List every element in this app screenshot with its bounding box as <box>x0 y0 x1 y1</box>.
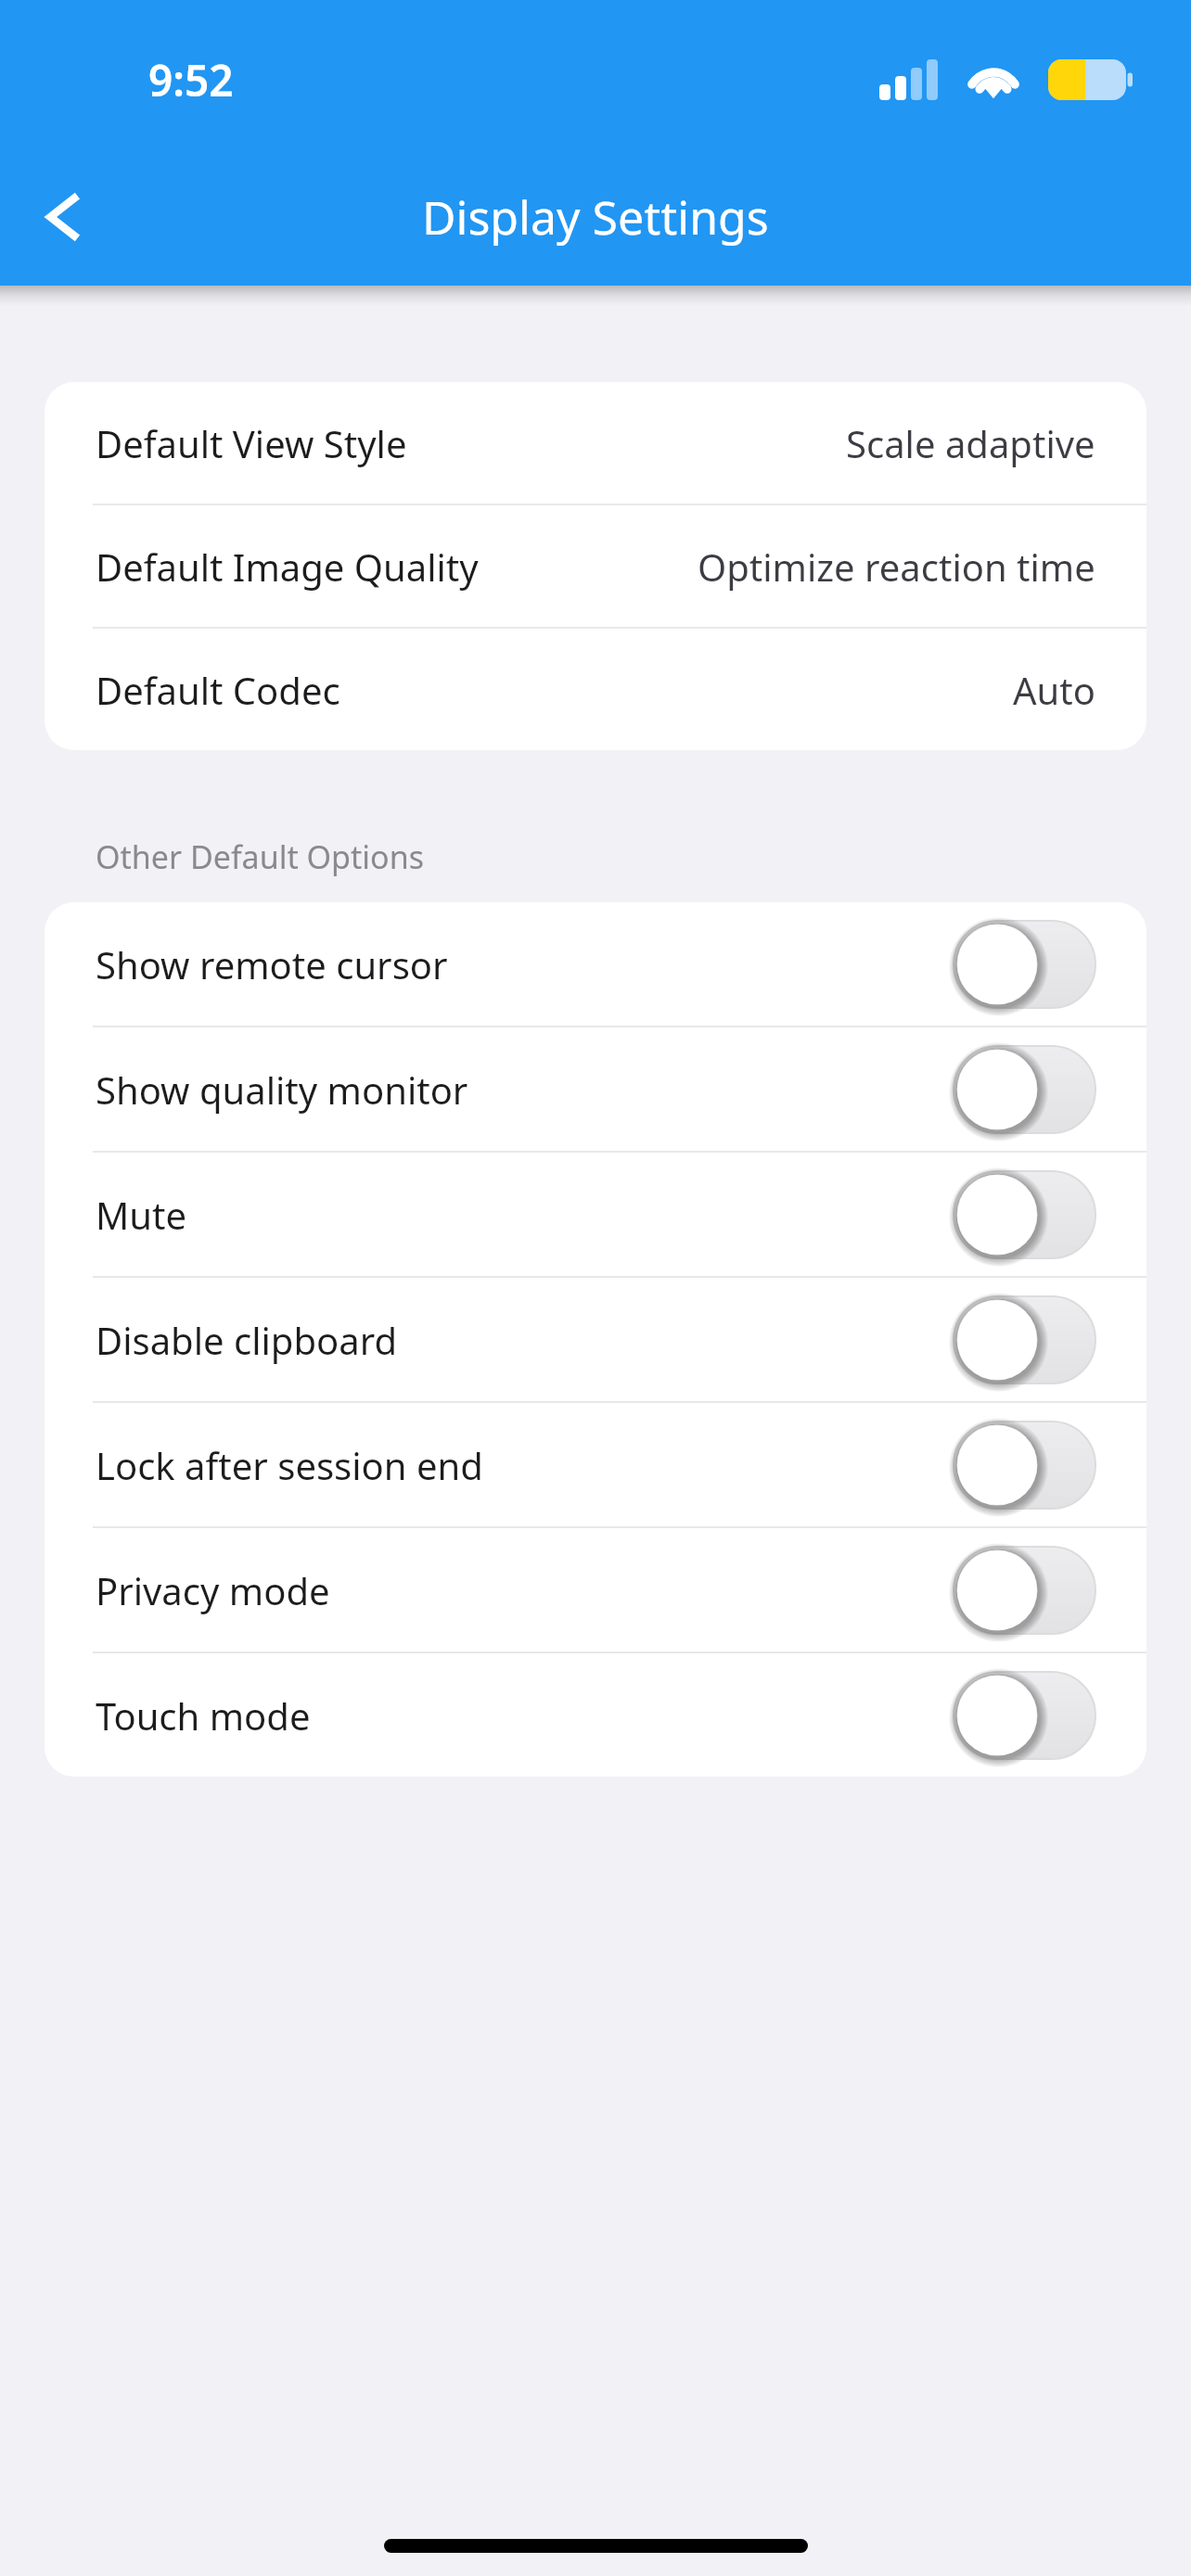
staticText: 9:52 <box>148 51 234 109</box>
button[interactable]: Lock after session end <box>45 1403 1146 1526</box>
button[interactable]: Toggle <box>954 921 1095 1008</box>
staticText: Optimize reaction time <box>698 542 1095 592</box>
staticText: Lock after session end <box>96 1440 483 1490</box>
button[interactable]: Show remote cursor <box>45 902 1146 1026</box>
button[interactable]: Toggle <box>954 1046 1095 1133</box>
button[interactable]: Default View Style <box>45 382 1146 504</box>
button[interactable]: Toggle <box>954 1422 1095 1509</box>
button[interactable]: Back <box>20 172 109 261</box>
button[interactable]: Toggle <box>954 1296 1095 1384</box>
staticText: Default Codec <box>96 665 340 715</box>
button[interactable]: Default Image Quality <box>45 505 1146 627</box>
button[interactable]: Mute <box>45 1153 1146 1276</box>
staticText: Scale adaptive <box>846 418 1095 468</box>
button[interactable]: Toggle <box>954 1547 1095 1634</box>
button[interactable]: Privacy mode <box>45 1528 1146 1651</box>
staticText: Show quality monitor <box>96 1065 468 1115</box>
staticText: Default Image Quality <box>96 542 479 592</box>
staticText: Default View Style <box>96 418 407 468</box>
staticText: Auto <box>1013 665 1095 715</box>
staticText: Other Default Options <box>96 835 424 878</box>
staticText: Touch mode <box>96 1690 311 1741</box>
button[interactable]: Disable clipboard <box>45 1278 1146 1401</box>
staticText: Privacy mode <box>96 1565 330 1615</box>
button[interactable]: Touch mode <box>45 1653 1146 1777</box>
button[interactable]: Show quality monitor <box>45 1027 1146 1151</box>
staticText: Mute <box>96 1190 186 1240</box>
button[interactable]: Toggle <box>954 1171 1095 1258</box>
staticText: Disable clipboard <box>96 1315 397 1365</box>
staticText: Show remote cursor <box>96 939 448 989</box>
button[interactable]: Default Codec <box>45 629 1146 750</box>
staticText: Display Settings <box>422 185 769 249</box>
button[interactable]: Toggle <box>954 1672 1095 1759</box>
